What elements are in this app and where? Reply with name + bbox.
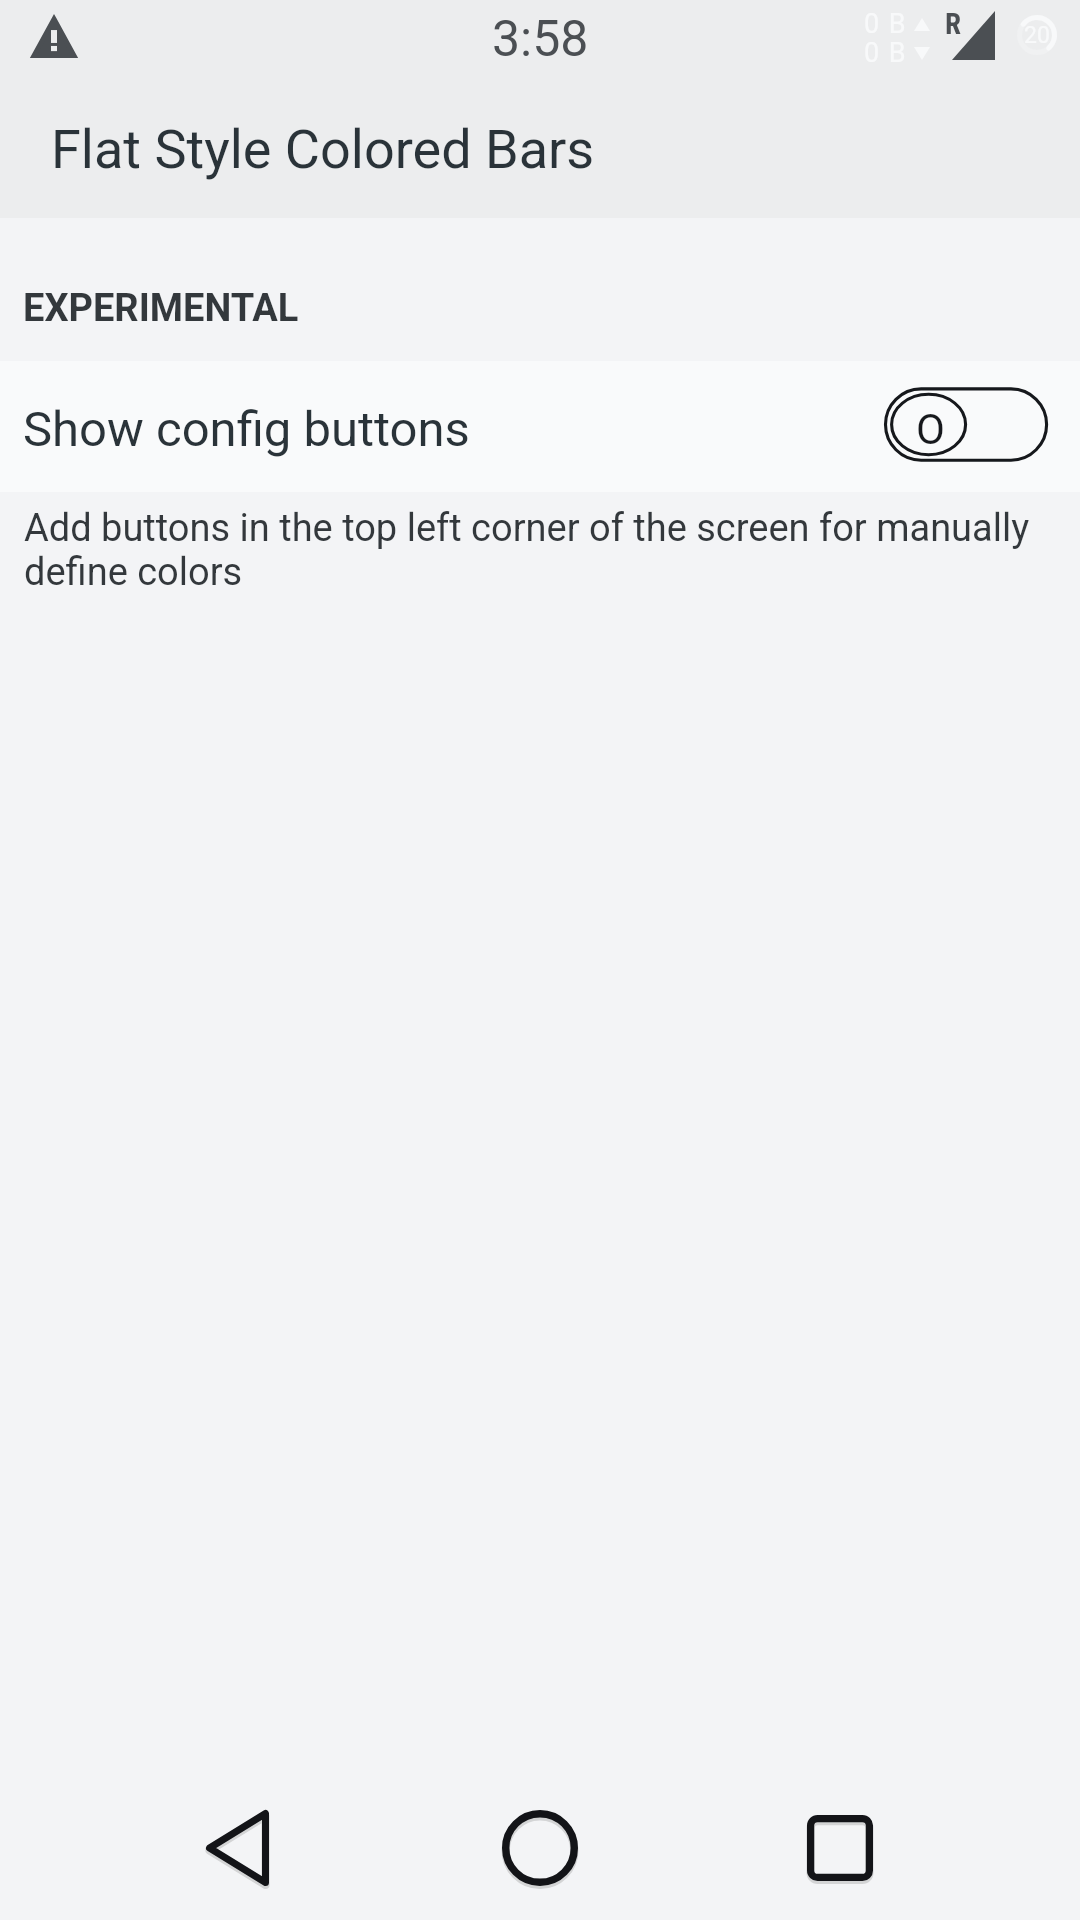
staticText: 0 B — [864, 37, 907, 69]
staticText: O — [916, 405, 945, 454]
staticText: Add buttons in the top left corner of th… — [24, 506, 1045, 594]
staticText: 20 — [1024, 22, 1050, 49]
button[interactable]: Recent apps — [750, 1768, 930, 1920]
staticText: Flat Style Colored Bars — [51, 118, 595, 181]
button[interactable]: Show config buttons — [0, 361, 1080, 492]
staticText: Show config buttons — [23, 401, 470, 458]
staticText: EXPERIMENTAL — [23, 286, 299, 331]
staticText: 3:58 — [492, 10, 589, 69]
button[interactable]: Flat Style Colored Bars — [0, 72, 1080, 218]
button[interactable]: Home — [450, 1768, 630, 1920]
button[interactable]: Show config buttons switch, off — [883, 383, 1059, 471]
staticText: R — [945, 7, 962, 41]
button[interactable]: Back — [147, 1768, 327, 1920]
staticText: 0 B — [864, 8, 907, 40]
